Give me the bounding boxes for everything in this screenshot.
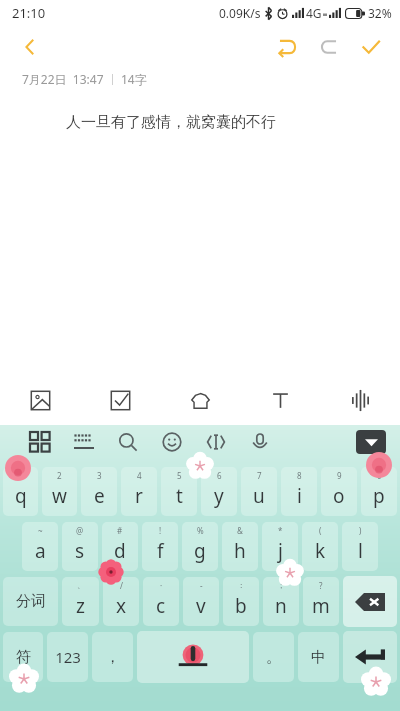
staticText: 7: [257, 470, 262, 481]
staticText: -: [200, 580, 203, 591]
staticText: d: [114, 538, 126, 564]
button[interactable]: ·: [143, 577, 179, 626]
button[interactable]: 0: [361, 467, 397, 516]
staticText: t: [176, 483, 183, 509]
staticText: 5: [177, 470, 182, 481]
button[interactable]: 9: [321, 467, 357, 516]
button[interactable]: Voice: [320, 375, 400, 425]
staticText: y: [214, 483, 224, 509]
button[interactable]: Delete: [343, 576, 397, 627]
button[interactable]: !: [142, 522, 178, 571]
staticText: h: [234, 538, 246, 564]
button[interactable]: ：: [223, 577, 259, 626]
button[interactable]: Done: [350, 26, 392, 68]
staticText: c: [156, 593, 166, 619]
button[interactable]: 符: [3, 632, 43, 682]
staticText: i: [297, 483, 302, 509]
staticText: 9: [337, 470, 342, 481]
button[interactable]: ~: [22, 522, 58, 571]
staticText: 1: [18, 470, 23, 481]
button[interactable]: Space: [137, 631, 249, 683]
staticText: 32%: [368, 5, 392, 21]
button[interactable]: Search: [106, 425, 150, 459]
staticText: 4G: [306, 5, 322, 21]
button[interactable]: 1: [3, 467, 38, 516]
staticText: x: [116, 593, 127, 619]
button[interactable]: 8: [281, 467, 317, 516]
staticText: w: [52, 483, 67, 509]
button[interactable]: 4: [121, 467, 157, 516]
staticText: b: [235, 593, 247, 619]
staticText: ~: [38, 525, 43, 536]
button[interactable]: @: [62, 522, 98, 571]
button[interactable]: ；: [263, 577, 299, 626]
button[interactable]: ?: [303, 577, 339, 626]
button[interactable]: 2: [42, 467, 77, 516]
button[interactable]: %: [182, 522, 218, 571]
button[interactable]: 、: [62, 577, 99, 626]
staticText: m: [312, 593, 330, 619]
staticText: f: [157, 538, 164, 564]
button[interactable]: Voice input: [238, 425, 282, 459]
staticText: j: [278, 538, 283, 564]
staticText: @: [76, 525, 84, 536]
button[interactable]: 5: [161, 467, 197, 516]
button[interactable]: 123: [47, 632, 88, 682]
staticText: l: [358, 538, 363, 564]
button[interactable]: Enter: [343, 631, 397, 683]
button[interactable]: Emoji: [150, 425, 194, 459]
button[interactable]: Keyboard layout: [62, 425, 106, 459]
staticText: r: [135, 483, 143, 509]
staticText: ?: [319, 580, 323, 591]
button[interactable]: Redo: [308, 26, 350, 68]
staticText: s: [75, 538, 85, 564]
staticText: n: [275, 593, 287, 619]
staticText: 4: [137, 470, 142, 481]
staticText: g: [194, 538, 206, 564]
staticText: 、: [77, 580, 85, 590]
staticText: %: [197, 525, 204, 536]
staticText: (: [319, 525, 322, 536]
button[interactable]: (: [302, 522, 338, 571]
button[interactable]: 分词: [3, 577, 58, 626]
button[interactable]: Checklist: [80, 375, 160, 425]
button[interactable]: /: [103, 577, 139, 626]
button[interactable]: 。: [253, 632, 294, 682]
button[interactable]: #: [102, 522, 138, 571]
button[interactable]: *: [262, 522, 298, 571]
staticText: 符: [16, 648, 31, 667]
staticText: p: [373, 483, 385, 509]
button[interactable]: 中: [298, 632, 339, 682]
staticText: *: [278, 525, 283, 536]
button[interactable]: Skin: [160, 375, 240, 425]
staticText: 7月22日 13:47: [22, 71, 104, 87]
button[interactable]: 3: [81, 467, 117, 516]
button[interactable]: ，: [92, 632, 133, 682]
staticText: ，: [105, 648, 120, 667]
button[interactable]: Back: [10, 27, 50, 67]
button[interactable]: Insert image: [0, 375, 80, 425]
button[interactable]: 7: [241, 467, 277, 516]
staticText: 中: [311, 648, 326, 667]
button[interactable]: Text format: [240, 375, 320, 425]
button[interactable]: Hide keyboard: [356, 430, 386, 454]
staticText: e: [94, 483, 105, 509]
staticText: v: [196, 593, 206, 619]
button[interactable]: Grid: [18, 425, 62, 459]
staticText: 14字: [121, 71, 147, 87]
staticText: z: [76, 593, 85, 619]
staticText: 分词: [16, 592, 46, 611]
button[interactable]: -: [183, 577, 219, 626]
staticText: !: [159, 525, 162, 536]
button[interactable]: 6: [201, 467, 237, 516]
staticText: 。: [266, 648, 281, 667]
button[interactable]: Cursor: [194, 425, 238, 459]
button[interactable]: &: [222, 522, 258, 571]
staticText: ): [359, 525, 362, 536]
button[interactable]: Undo: [266, 26, 308, 68]
staticText: u: [253, 483, 265, 509]
button[interactable]: ): [342, 522, 378, 571]
staticText: ；: [277, 580, 285, 590]
staticText: 2: [57, 470, 62, 481]
staticText: /: [120, 580, 123, 591]
